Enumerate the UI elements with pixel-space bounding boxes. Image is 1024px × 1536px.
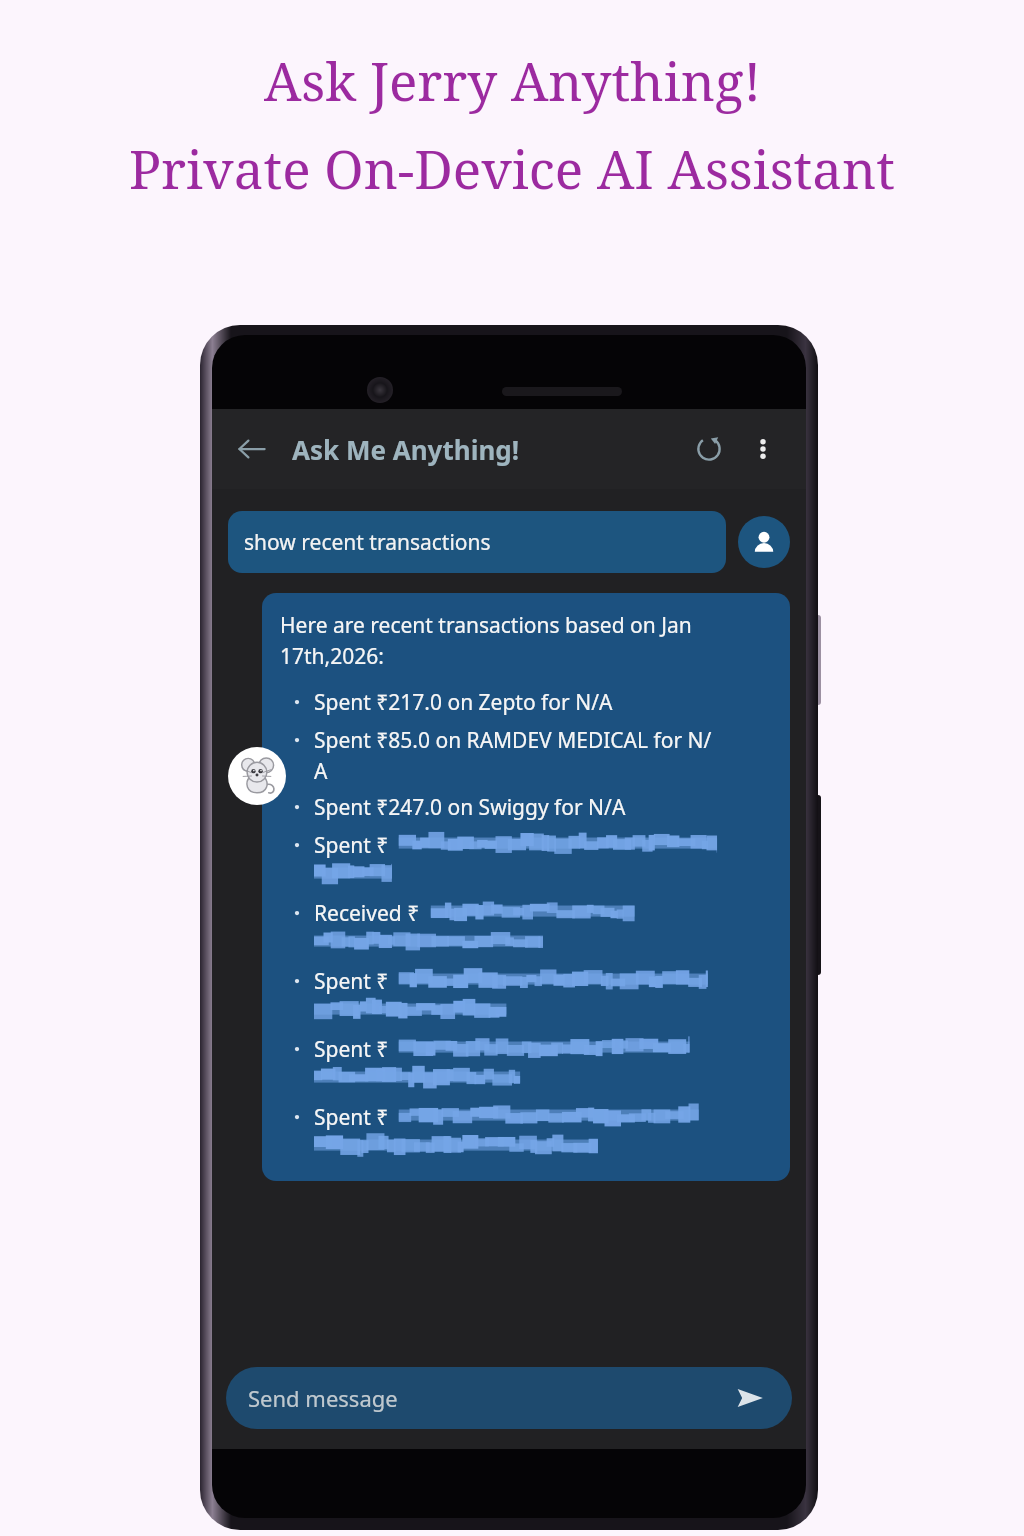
staticText: Ask Jerry Anything! xyxy=(264,44,761,116)
button[interactable]: Send xyxy=(730,1378,770,1418)
staticText: Send message xyxy=(248,1383,398,1413)
staticText: Spent ₹ xyxy=(314,1035,607,1064)
button[interactable]: Back xyxy=(226,423,278,475)
staticText: show recent transactions xyxy=(244,528,491,557)
button[interactable]: Jerry assistant avatar xyxy=(228,747,286,805)
staticText: Spent ₹85.0 on RAMDEV MEDICAL for N/ A xyxy=(314,726,712,785)
button[interactable]: show recent transactions xyxy=(228,511,726,573)
staticText: Here are recent transactions based on Ja… xyxy=(280,611,692,670)
staticText: Received ₹ xyxy=(314,899,638,928)
button[interactable]: Here are recent transactions based on Ja… xyxy=(262,593,790,1181)
staticText: Ask Me Anything! xyxy=(292,432,520,467)
button[interactable]: More options xyxy=(736,422,790,476)
staticText: Private On-Device AI Assistant xyxy=(129,132,895,204)
button[interactable]: User avatar xyxy=(738,516,790,568)
staticText: Spent ₹247.0 on Swiggy for N/A xyxy=(314,793,626,822)
staticText: Spent ₹ xyxy=(314,1103,607,1132)
staticText: Spent ₹217.0 on Zepto for N/A xyxy=(314,688,613,717)
staticText: Spent ₹ xyxy=(314,967,607,996)
button[interactable]: Send message xyxy=(226,1367,792,1429)
staticText: Spent ₹ xyxy=(314,831,607,860)
button[interactable]: Refresh xyxy=(682,422,736,476)
